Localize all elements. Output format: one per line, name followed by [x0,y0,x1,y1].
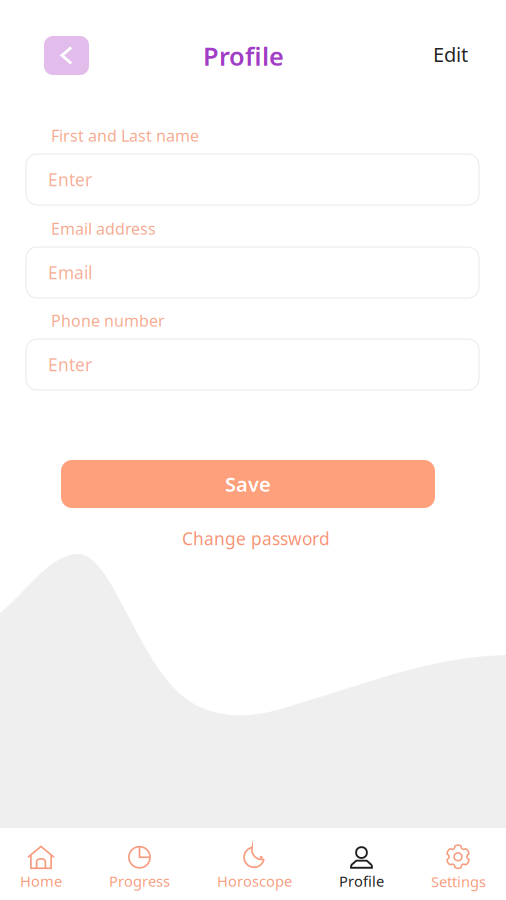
staticText: Profile [203,39,284,73]
button[interactable]: Email [26,247,479,298]
staticText: Phone number [51,310,165,331]
staticText: Profile [339,871,384,891]
button[interactable]: Progress [109,827,170,900]
staticText: Settings [431,872,486,891]
staticText: Edit [433,41,468,68]
staticText: First and Last name [51,125,199,146]
staticText: Progress [109,871,170,891]
staticText: Home [20,871,62,891]
button[interactable]: Change password [182,527,330,550]
staticText: Change password [182,527,330,550]
staticText: Email [48,261,92,284]
staticText: Enter [48,353,92,376]
button[interactable]: Home [20,827,62,900]
button[interactable]: Settings [431,827,486,900]
button[interactable]: Enter [26,339,479,390]
staticText: Email address [51,218,156,239]
button[interactable]: Save [61,460,435,508]
staticText: Enter [48,168,92,191]
button[interactable]: Back [44,36,89,75]
button[interactable]: Edit [433,41,468,68]
button[interactable]: Horoscope [217,827,292,900]
staticText: Save [225,471,271,497]
button[interactable]: Profile [339,827,384,900]
staticText: Horoscope [217,871,292,891]
button[interactable]: Enter [26,154,479,205]
